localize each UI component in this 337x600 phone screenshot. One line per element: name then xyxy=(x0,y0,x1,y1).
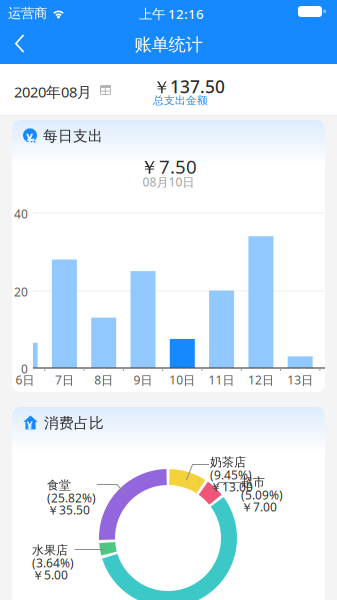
staticText: 每日支出 xyxy=(43,127,103,145)
staticText: 2020年08月 xyxy=(14,82,92,101)
staticText: 10日 xyxy=(169,372,195,388)
staticText: 11日 xyxy=(209,372,235,388)
staticText: ￥35.50 xyxy=(47,502,90,518)
staticText: 08月10日 xyxy=(142,174,194,190)
staticText: (9.45%) xyxy=(210,467,252,483)
staticText: ￥137.50 xyxy=(153,75,225,98)
staticText: 账单统计 xyxy=(134,34,202,55)
staticText: 运营商 xyxy=(8,5,47,21)
staticText: 9日 xyxy=(133,372,152,388)
staticText: 奶茶店 xyxy=(210,455,246,470)
staticText: 消费占比 xyxy=(44,414,104,432)
staticText: ￥5.00 xyxy=(32,567,68,583)
staticText: 40 xyxy=(14,206,28,222)
staticText: 0 xyxy=(21,361,28,377)
staticText: 8日 xyxy=(94,372,113,388)
staticText: ￥7.50 xyxy=(140,154,197,179)
staticText: ¥ xyxy=(27,418,33,432)
staticText: (3.64%) xyxy=(32,555,74,571)
staticText: (5.09%) xyxy=(241,487,283,503)
staticText: 食堂 xyxy=(47,478,71,493)
staticText: ￥7.00 xyxy=(241,499,277,515)
staticText: 7日 xyxy=(55,372,74,388)
staticText: 超市 xyxy=(241,475,265,490)
staticText: ￥13.00 xyxy=(210,479,253,495)
staticText: 总支出金额 xyxy=(153,94,208,107)
button[interactable]: 2020年08月 xyxy=(0,64,125,116)
staticText: 20 xyxy=(14,284,28,300)
staticText: 上午 12:16 xyxy=(139,5,204,23)
staticText: ¥ xyxy=(26,130,33,146)
staticText: 12日 xyxy=(248,372,274,388)
button[interactable]: Back xyxy=(0,24,44,64)
staticText: (25.82%) xyxy=(47,490,96,506)
staticText: 水果店 xyxy=(32,543,68,558)
staticText: 6日 xyxy=(16,372,35,388)
staticText: 13日 xyxy=(287,372,313,388)
